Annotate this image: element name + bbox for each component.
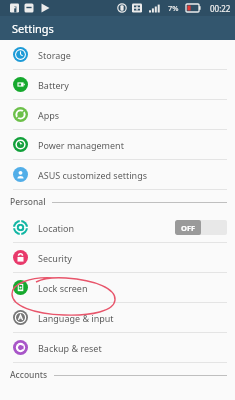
staticText: Power management — [38, 139, 124, 151]
button[interactable]: ASUS customized settings — [0, 160, 235, 190]
staticText: Personal — [10, 196, 46, 208]
staticText: Security — [38, 252, 72, 264]
staticText: Language & input — [38, 312, 114, 324]
button[interactable]: Power management — [0, 130, 235, 160]
button[interactable]: Lock screen — [0, 273, 235, 303]
button[interactable]: Backup & reset — [0, 333, 235, 363]
staticText: ASUS customized settings — [38, 169, 147, 181]
button[interactable]: OFF — [175, 220, 227, 235]
button[interactable]: Battery — [0, 70, 235, 100]
staticText: 00:22 — [210, 3, 231, 14]
staticText: Lock screen — [38, 282, 88, 294]
staticText: 7% — [168, 3, 179, 13]
staticText: Settings — [12, 21, 54, 36]
button[interactable]: Storage — [0, 40, 235, 70]
staticText: Storage — [38, 49, 71, 61]
button[interactable]: Location — [0, 213, 235, 243]
staticText: Location — [38, 222, 75, 234]
staticText: Battery — [38, 79, 69, 91]
staticText: OFF — [181, 223, 196, 233]
staticText: Accounts — [10, 369, 48, 381]
staticText: Apps — [38, 109, 60, 121]
button[interactable]: Apps — [0, 100, 235, 130]
button[interactable]: Security — [0, 243, 235, 273]
staticText: Backup & reset — [38, 342, 102, 354]
button[interactable]: Language & input — [0, 303, 235, 333]
